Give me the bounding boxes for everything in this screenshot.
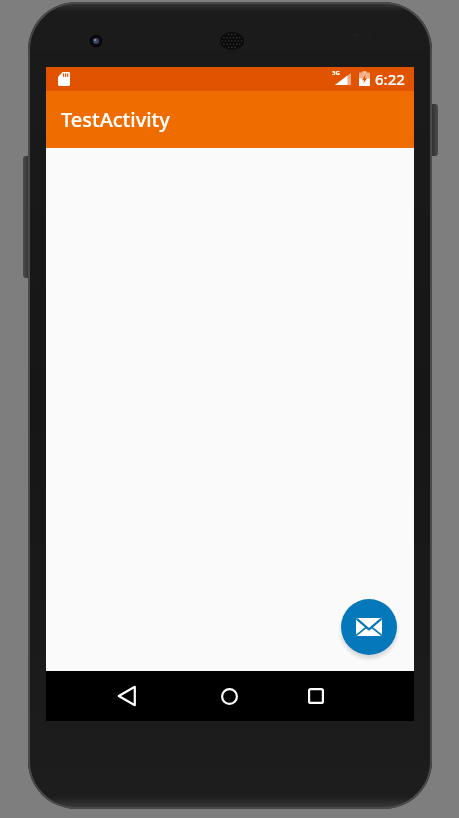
staticText: 6:22 [375,69,405,89]
button[interactable] [107,676,147,716]
staticText: 3G [332,69,340,77]
button[interactable] [209,676,249,716]
button[interactable] [341,599,397,655]
staticText: TestActivity [61,106,170,133]
button[interactable] [296,676,336,716]
